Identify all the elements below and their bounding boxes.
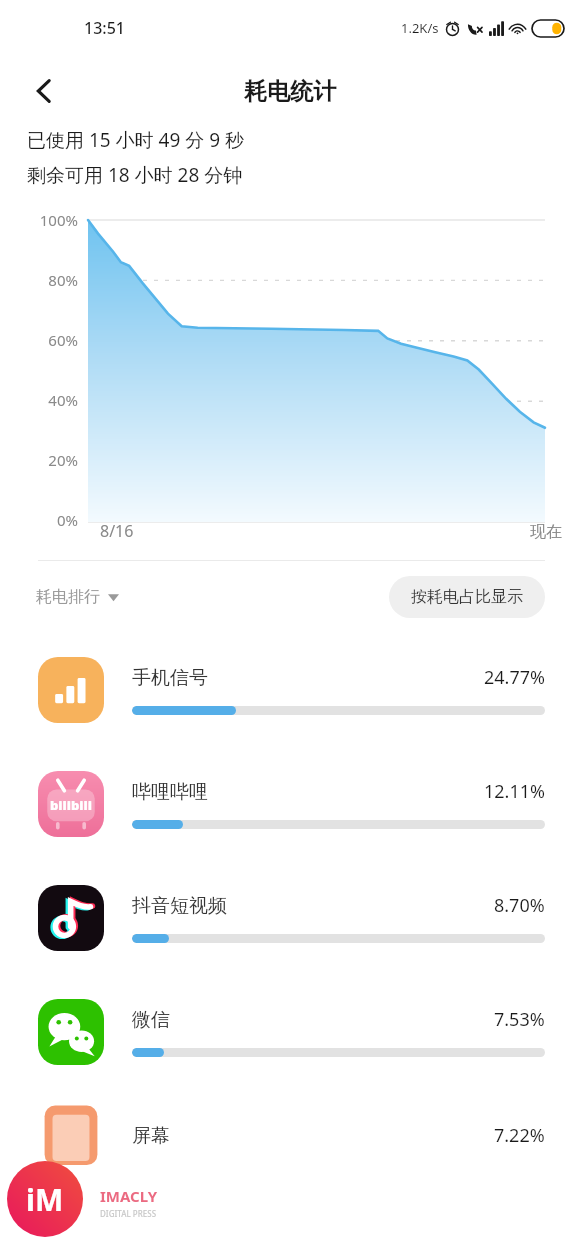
staticText: 20%: [48, 450, 78, 470]
staticText: 1.2K/s: [401, 19, 439, 37]
staticText: 按耗电占比显示: [411, 587, 523, 607]
staticText: 7.22%: [494, 1123, 545, 1148]
staticText: IMACLY: [100, 1186, 158, 1206]
staticText: 屏幕: [132, 1124, 494, 1148]
staticText: 已使用 15 小时 49 分 9 秒: [27, 127, 244, 153]
staticText: 耗电排行: [36, 587, 100, 607]
staticText: DIGITAL PRESS: [100, 1208, 157, 1219]
button[interactable]: 耗电排行: [32, 581, 123, 613]
staticText: 8/16: [100, 520, 134, 542]
button[interactable]: 抖音短视频: [0, 861, 580, 975]
staticText: 7.53%: [494, 1007, 545, 1032]
staticText: 0%: [56, 510, 78, 530]
button[interactable]: 按耗电占比显示: [389, 576, 545, 618]
staticText: 12.11%: [484, 779, 545, 804]
button[interactable]: 微信: [0, 975, 580, 1089]
staticText: 抖音短视频: [132, 894, 494, 918]
staticText: 80%: [48, 270, 78, 290]
staticText: 60%: [48, 330, 78, 350]
staticText: 40%: [48, 390, 78, 410]
staticText: 24.77%: [484, 665, 545, 690]
staticText: 现在: [530, 522, 562, 542]
button[interactable]: Back: [18, 65, 70, 117]
staticText: 剩余可用 18 小时 28 分钟: [27, 162, 243, 188]
button[interactable]: bilibili: [0, 747, 580, 861]
staticText: iM: [26, 1179, 64, 1220]
staticText: 手机信号: [132, 666, 484, 690]
staticText: 100%: [39, 210, 78, 230]
staticText: 8.70%: [494, 893, 545, 918]
staticText: 哔哩哔哩: [132, 780, 484, 804]
staticText: bilibili: [50, 796, 93, 814]
staticText: 微信: [132, 1008, 494, 1032]
staticText: 13:51: [84, 17, 125, 39]
button[interactable]: 屏幕: [0, 1089, 580, 1181]
staticText: 耗电统计: [244, 77, 336, 106]
button[interactable]: 手机信号: [0, 633, 580, 747]
